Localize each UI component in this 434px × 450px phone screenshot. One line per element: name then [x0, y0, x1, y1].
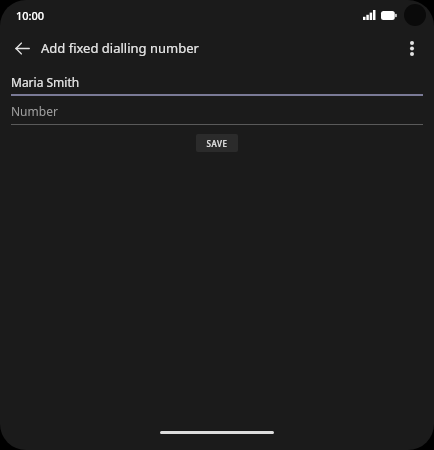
button[interactable]: Number [11, 103, 423, 125]
staticText: Maria Smith [11, 74, 80, 90]
button[interactable]: SAVE [196, 134, 238, 152]
button[interactable]: Back [6, 32, 38, 64]
staticText: Add fixed dialling number [41, 39, 199, 57]
staticText: Number [11, 103, 58, 119]
staticText: 10:00 [16, 8, 45, 23]
button[interactable]: Maria Smith [11, 74, 423, 96]
button[interactable]: More options [396, 32, 428, 64]
staticText: SAVE [206, 138, 228, 149]
